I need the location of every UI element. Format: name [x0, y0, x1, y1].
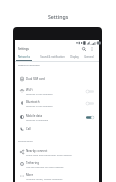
- button[interactable]: More options: [87, 44, 96, 53]
- staticText: Nearby connect: [26, 149, 48, 153]
- staticText: Networks: [18, 55, 30, 58]
- staticText: Settings: [18, 47, 29, 51]
- staticText: Settings: [48, 13, 69, 20]
- staticText: Mobile data: [26, 114, 43, 118]
- staticText: Display: [70, 55, 79, 58]
- button[interactable]: Call: [15, 123, 99, 136]
- staticText: WIRELESS NETWORKS: [18, 64, 40, 67]
- staticText: Sound & notification: [40, 55, 65, 58]
- staticText: Airplane mode, Mobile networks: [26, 177, 63, 180]
- button[interactable]: Dual SIM card: [15, 73, 99, 86]
- button[interactable]: Tethering: [15, 158, 99, 171]
- button[interactable]: Mobile data: [15, 111, 99, 124]
- button[interactable]: Networks: [12, 53, 35, 60]
- staticText: Wi-Fi: [26, 88, 33, 92]
- button[interactable]: Nearby connect: [15, 146, 99, 159]
- staticText: Dual SIM card: [26, 77, 45, 81]
- staticText: General: [84, 55, 94, 58]
- staticText: Use the Internet on other devices: [26, 165, 64, 168]
- staticText: Internet is not available: [26, 92, 53, 95]
- button[interactable]: Toggle Wi-Fi: [84, 88, 96, 95]
- staticText: Internet is available: [26, 118, 49, 121]
- staticText: Bluetooth: [26, 100, 40, 104]
- button[interactable]: Bluetooth: [15, 97, 99, 110]
- button[interactable]: Search: [79, 44, 88, 53]
- button[interactable]: General: [81, 53, 97, 60]
- button[interactable]: More: [15, 170, 99, 182]
- staticText: More: [26, 173, 34, 177]
- button[interactable]: Sound & notification: [39, 53, 65, 60]
- button[interactable]: Toggle Bluetooth: [84, 100, 96, 107]
- staticText: Call: [26, 127, 31, 131]
- button[interactable]: Wi-Fi: [15, 85, 99, 98]
- button[interactable]: Display: [66, 53, 82, 60]
- button[interactable]: Toggle Mobile data: [84, 114, 96, 121]
- staticText: Tethering: [26, 161, 39, 165]
- staticText: Internet is not available: [26, 104, 53, 107]
- staticText: CONNECTIVITY: [18, 140, 34, 143]
- staticText: Share data and media with other devices: [26, 153, 72, 156]
